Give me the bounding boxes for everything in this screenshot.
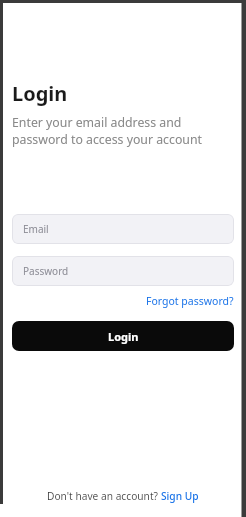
- button[interactable]: Forgot password?: [146, 294, 234, 308]
- staticText: Enter your email address and password to…: [12, 114, 202, 147]
- button[interactable]: Sign Up: [161, 489, 199, 503]
- button[interactable]: Password: [12, 256, 234, 286]
- staticText: Password: [23, 264, 69, 278]
- staticText: Don't have an account?: [47, 489, 161, 503]
- button[interactable]: Email: [12, 214, 234, 244]
- staticText: Email: [23, 222, 49, 236]
- staticText: Login: [12, 80, 68, 107]
- button[interactable]: Login: [12, 321, 234, 351]
- staticText: Login: [108, 329, 139, 344]
